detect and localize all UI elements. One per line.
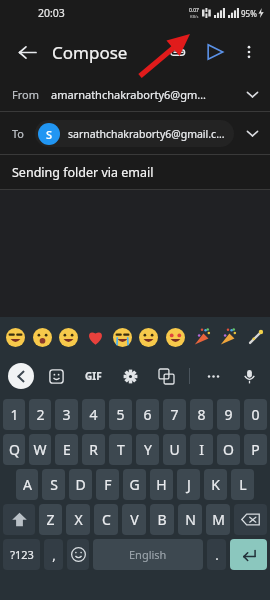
button[interactable]: G	[123, 469, 146, 500]
button[interactable]: R	[82, 434, 105, 465]
button[interactable]: X	[66, 504, 90, 535]
staticText: A	[23, 475, 32, 494]
button[interactable]: More options	[234, 37, 264, 67]
staticText: English	[129, 547, 167, 562]
button[interactable]: 4	[82, 399, 105, 430]
staticText: sarnathchakraborty6@gmail.c…	[68, 127, 225, 141]
button[interactable]: 3	[55, 399, 78, 430]
button[interactable]: K	[204, 469, 227, 500]
button[interactable]: Q	[3, 434, 25, 465]
button[interactable]: Send	[198, 35, 232, 69]
button[interactable]: F	[96, 469, 119, 500]
button[interactable]: Z	[39, 504, 62, 535]
button[interactable]: 9	[217, 399, 240, 430]
button[interactable]: Emoji	[67, 539, 89, 570]
button[interactable]: Shift	[3, 504, 35, 535]
staticText: M	[212, 510, 225, 529]
staticText: 5	[116, 405, 125, 424]
button[interactable]: M	[206, 504, 230, 535]
button[interactable]: J	[177, 469, 200, 500]
staticText: Q	[9, 440, 20, 459]
button[interactable]: 6	[136, 399, 159, 430]
staticText: S	[50, 475, 58, 494]
staticText: .	[215, 546, 219, 564]
staticText: X	[74, 510, 83, 529]
button[interactable]: GIF	[78, 363, 108, 389]
button[interactable]: Heart emoji	[84, 326, 106, 348]
button[interactable]: S	[35, 120, 234, 147]
button[interactable]: V	[122, 504, 146, 535]
button[interactable]: Back	[10, 35, 44, 69]
button[interactable]: H	[150, 469, 173, 500]
button[interactable]: ?123	[3, 539, 40, 570]
button[interactable]: Y	[136, 434, 159, 465]
button[interactable]: O	[217, 434, 240, 465]
button[interactable]: 1	[3, 399, 25, 430]
staticText: 6	[143, 405, 152, 424]
button[interactable]: Back to keyboard	[8, 363, 34, 389]
staticText: 0.07	[189, 7, 199, 14]
button[interactable]: Emoji	[4, 326, 26, 348]
staticText: KB/s	[190, 14, 199, 19]
button[interactable]: To	[0, 112, 270, 154]
button[interactable]: 7	[163, 399, 186, 430]
button[interactable]: Emoji	[57, 326, 79, 348]
staticText: N	[185, 510, 196, 529]
button[interactable]: I	[190, 434, 213, 465]
button[interactable]: B	[150, 504, 174, 535]
button[interactable]: From	[0, 78, 270, 111]
staticText: GIF	[85, 369, 102, 383]
staticText: To	[12, 126, 25, 141]
button[interactable]: English	[93, 539, 203, 570]
button[interactable]: Emoji	[111, 326, 133, 348]
button[interactable]: Translate	[153, 363, 179, 389]
button[interactable]: 2	[29, 399, 51, 430]
staticText: W	[33, 440, 47, 459]
staticText: I	[199, 440, 204, 459]
button[interactable]: D	[69, 469, 92, 500]
button[interactable]: 8	[190, 399, 213, 430]
staticText: 2	[36, 405, 45, 424]
staticText: P	[251, 440, 260, 459]
button[interactable]: L	[231, 469, 254, 500]
staticText: 0	[251, 405, 260, 424]
staticText: S	[46, 127, 53, 142]
button[interactable]: Emoji	[137, 326, 159, 348]
button[interactable]: A	[16, 469, 38, 500]
button[interactable]: Confetti emoji	[217, 326, 239, 348]
button[interactable]: Stickers	[43, 363, 69, 389]
staticText: 3	[62, 405, 71, 424]
button[interactable]: P	[244, 434, 267, 465]
button[interactable]: .	[207, 539, 226, 570]
button[interactable]: U	[163, 434, 186, 465]
button[interactable]: More	[200, 363, 226, 389]
button[interactable]: Emoji	[31, 326, 53, 348]
button[interactable]: ,	[44, 539, 63, 570]
button[interactable]: N	[178, 504, 202, 535]
button[interactable]: Party popper emoji	[191, 326, 213, 348]
staticText: D	[75, 475, 86, 494]
button[interactable]: Voice input	[236, 363, 262, 389]
button[interactable]: Sticker	[244, 326, 266, 348]
button[interactable]: Sending folder via email	[0, 155, 270, 189]
button[interactable]: E	[55, 434, 78, 465]
button[interactable]: C	[94, 504, 118, 535]
staticText: 20:03	[38, 6, 65, 20]
staticText: 9	[224, 405, 233, 424]
button[interactable]: 0	[244, 399, 267, 430]
staticText: Z	[46, 510, 55, 529]
staticText: E	[63, 440, 71, 459]
staticText: 7	[170, 405, 179, 424]
button[interactable]: W	[29, 434, 51, 465]
staticText: U	[169, 440, 180, 459]
staticText: Sending folder via email	[12, 164, 154, 181]
button[interactable]: Attach file	[160, 35, 194, 69]
button[interactable]: Emoji	[164, 326, 186, 348]
button[interactable]: S	[42, 469, 65, 500]
staticText: B	[157, 510, 167, 529]
button[interactable]: Backspace	[234, 504, 267, 535]
button[interactable]: T	[109, 434, 132, 465]
button[interactable]: 5	[109, 399, 132, 430]
button[interactable]: Settings	[117, 363, 143, 389]
button[interactable]: Enter	[230, 539, 267, 570]
